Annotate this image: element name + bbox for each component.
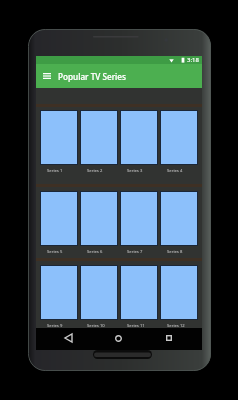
button[interactable]: Series 5 bbox=[40, 191, 78, 260]
button[interactable]: Series 9 bbox=[40, 265, 78, 334]
button[interactable]: Series 3 bbox=[120, 110, 158, 179]
staticText: Series 9 bbox=[47, 323, 63, 329]
staticText: Series 10 bbox=[87, 323, 105, 329]
button[interactable]: Series 1 bbox=[40, 110, 78, 179]
staticText: 3:18 bbox=[187, 56, 199, 64]
staticText: Series 11 bbox=[127, 323, 145, 329]
button[interactable]: Back bbox=[60, 330, 76, 346]
staticText: Popular TV Series bbox=[58, 71, 127, 82]
button[interactable]: Series 6 bbox=[80, 191, 118, 260]
staticText: Series 4 bbox=[167, 168, 183, 174]
staticText: Series 12 bbox=[167, 323, 185, 329]
staticText: Series 1 bbox=[47, 168, 63, 174]
button[interactable]: Series 12 bbox=[160, 265, 198, 334]
button[interactable]: Recent apps bbox=[161, 330, 177, 346]
button[interactable]: Series 4 bbox=[160, 110, 198, 179]
staticText: Series 5 bbox=[47, 249, 63, 255]
button[interactable]: Open navigation drawer bbox=[40, 64, 54, 88]
button[interactable]: Series 8 bbox=[160, 191, 198, 260]
staticText: Series 2 bbox=[87, 168, 103, 174]
staticText: Series 8 bbox=[167, 249, 183, 255]
button[interactable]: Series 2 bbox=[80, 110, 118, 179]
button[interactable]: Series 10 bbox=[80, 265, 118, 334]
button[interactable]: Home bbox=[110, 330, 126, 346]
button[interactable]: Series 7 bbox=[120, 191, 158, 260]
staticText: Series 3 bbox=[127, 168, 143, 174]
staticText: Series 6 bbox=[87, 249, 103, 255]
staticText: Series 7 bbox=[127, 249, 143, 255]
button[interactable]: Series 11 bbox=[120, 265, 158, 334]
